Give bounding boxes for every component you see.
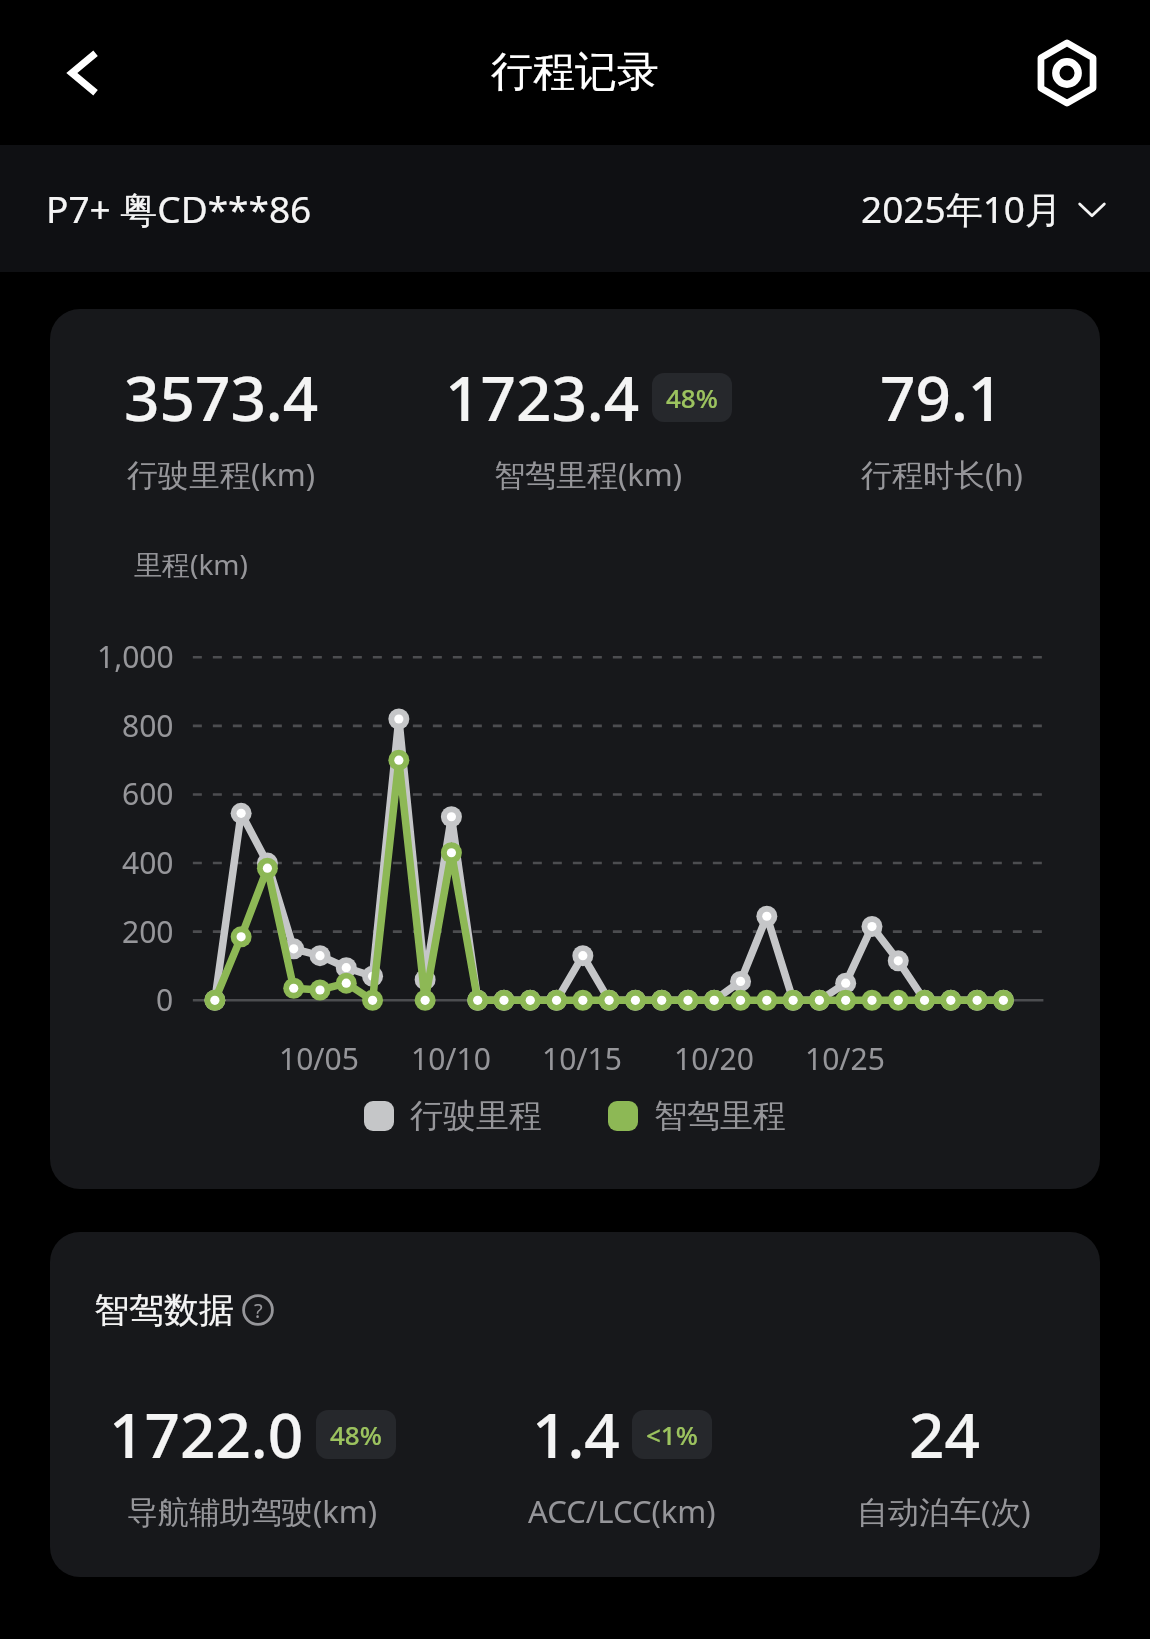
staticText: 0 — [156, 979, 174, 1020]
staticText: 48% — [330, 1417, 382, 1452]
staticText: 10/05 — [279, 1038, 359, 1079]
staticText: 200 — [122, 911, 174, 952]
staticText: 行驶里程 — [410, 1095, 542, 1137]
button[interactable]: 智驾里程 — [608, 1095, 786, 1137]
staticText: 智驾里程 — [654, 1095, 786, 1137]
button[interactable]: Settings — [1024, 30, 1110, 116]
button[interactable]: 行驶里程 — [364, 1095, 542, 1137]
staticText: 600 — [122, 773, 174, 814]
staticText: 79.1 — [880, 355, 1004, 439]
staticText: P7+ 粤CD***86 — [46, 183, 312, 234]
staticText: 10/10 — [411, 1038, 491, 1079]
staticText: ? — [254, 1297, 263, 1324]
staticText: 3573.4 — [124, 355, 319, 439]
staticText: 导航辅助驾驶(km) — [127, 1490, 378, 1532]
staticText: 1722.0 — [109, 1392, 304, 1476]
staticText: 400 — [122, 842, 174, 883]
staticText: 智驾数据 — [94, 1288, 234, 1332]
button[interactable]: 2025年10月 — [861, 183, 1106, 234]
staticText: 行驶里程(km) — [127, 453, 316, 495]
staticText: 1,000 — [97, 636, 174, 677]
staticText: 10/25 — [805, 1038, 885, 1079]
staticText: <1% — [646, 1417, 698, 1452]
button[interactable]: Back — [42, 30, 128, 116]
staticText: 行程记录 — [491, 46, 659, 99]
staticText: 800 — [122, 705, 174, 746]
staticText: 10/15 — [542, 1038, 622, 1079]
staticText: ACC/LCC(km) — [528, 1490, 716, 1532]
button[interactable]: 智驾数据 — [94, 1288, 274, 1332]
staticText: 里程(km) — [134, 545, 248, 583]
staticText: 2025年10月 — [861, 183, 1062, 234]
staticText: 48% — [666, 380, 718, 415]
staticText: 自动泊车(次) — [857, 1490, 1031, 1532]
staticText: 10/20 — [674, 1038, 754, 1079]
staticText: 智驾里程(km) — [494, 453, 683, 495]
staticText: 1723.4 — [445, 355, 640, 439]
staticText: 1.4 — [532, 1392, 620, 1476]
staticText: 行程时长(h) — [861, 453, 1023, 495]
staticText: 24 — [909, 1392, 980, 1476]
